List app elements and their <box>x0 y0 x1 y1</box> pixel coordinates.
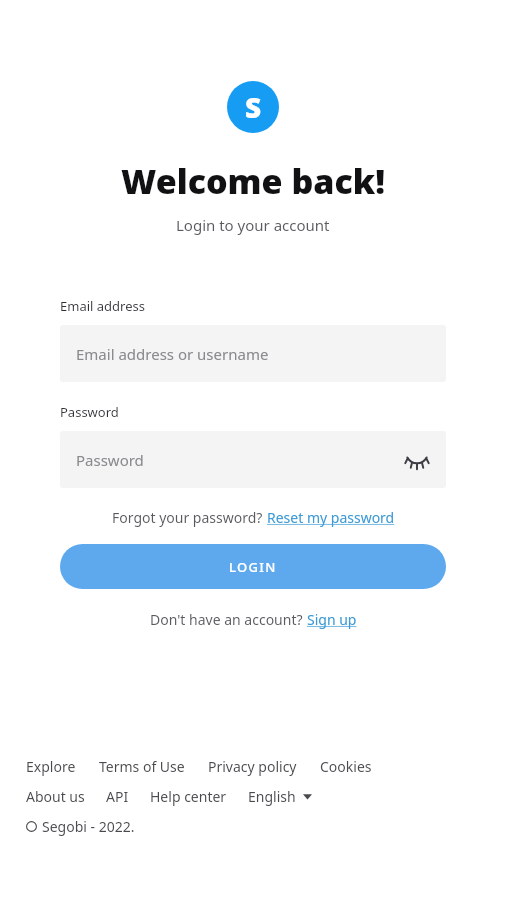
button[interactable]: Cookies <box>320 757 372 776</box>
button[interactable]: Show password <box>402 445 432 475</box>
button[interactable]: Sign up <box>307 610 357 629</box>
staticText: LOGIN <box>229 558 277 576</box>
staticText: Email address <box>60 297 145 315</box>
button[interactable]: English <box>248 787 312 806</box>
button[interactable]: API <box>106 787 129 806</box>
button[interactable]: Help center <box>150 787 227 806</box>
staticText: Email address or username <box>76 344 432 364</box>
staticText: Don't have an account? <box>150 610 307 629</box>
staticText: Help center <box>150 787 227 806</box>
staticText: Login to your account <box>176 215 330 235</box>
staticText: Sign up <box>307 610 357 629</box>
staticText: Privacy policy <box>208 757 297 776</box>
button[interactable]: Segobi logo <box>227 81 279 133</box>
staticText: API <box>106 787 129 806</box>
button[interactable]: Email address or username <box>60 325 446 382</box>
button[interactable]: Reset my password <box>267 508 395 527</box>
button[interactable]: Privacy policy <box>208 757 297 776</box>
staticText: Password <box>76 450 402 470</box>
staticText: English <box>248 787 296 806</box>
staticText: Explore <box>26 757 76 776</box>
staticText: Reset my password <box>267 508 395 527</box>
button[interactable]: Terms of Use <box>99 757 185 776</box>
staticText: Cookies <box>320 757 372 776</box>
button[interactable]: Explore <box>26 757 76 776</box>
button[interactable]: Password <box>60 431 446 488</box>
staticText: S <box>245 88 262 126</box>
staticText: Forgot your password? <box>112 508 267 527</box>
staticText: Terms of Use <box>99 757 185 776</box>
button[interactable]: About us <box>26 787 85 806</box>
staticText: About us <box>26 787 85 806</box>
staticText: Password <box>60 403 119 421</box>
button[interactable]: LOGIN <box>60 544 446 589</box>
staticText: Welcome back! <box>121 158 386 204</box>
staticText: Segobi - 2022. <box>42 817 135 836</box>
